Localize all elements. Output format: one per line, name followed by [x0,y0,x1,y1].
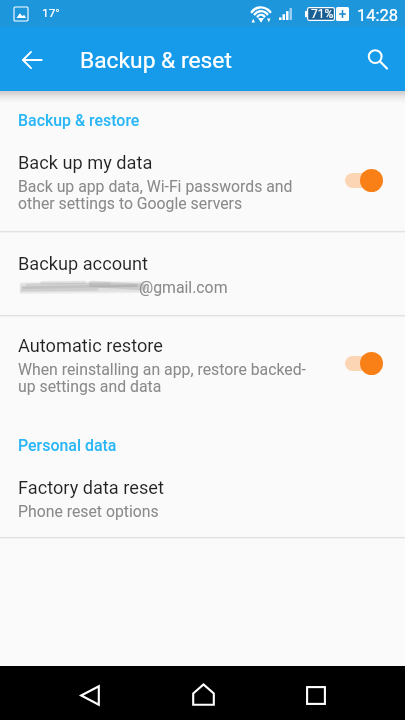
button[interactable]: Backup account [0,240,405,317]
staticText: Personal data [18,436,117,455]
staticText: Backup & reset [80,47,232,74]
button[interactable]: Home [176,667,230,720]
staticText: Backup & restore [18,111,140,130]
button[interactable]: Back up my data [0,139,405,233]
button[interactable]: Automatic restore [0,322,405,416]
button[interactable]: Toggle [344,347,392,381]
staticText: 71% [311,7,334,21]
button[interactable]: Recents [289,668,343,720]
staticText: Phone reset options [18,502,159,521]
staticText: 14:28 [357,6,399,25]
button[interactable]: Back [8,36,55,83]
staticText: When reinstalling an app, restore backed… [18,360,306,396]
staticText: Back up app data, Wi-Fi passwords and ot… [18,177,293,213]
staticText: @gmail.com [139,278,228,297]
button[interactable]: Factory data reset [0,464,405,539]
button[interactable]: Toggle [344,164,392,198]
button[interactable]: Search [352,36,399,83]
staticText: Backup account [18,253,149,274]
staticText: Factory data reset [18,477,164,498]
button[interactable]: Back [63,668,117,720]
staticText: 17° [42,6,60,20]
staticText: Automatic restore [18,335,163,356]
staticText: Back up my data [18,152,153,173]
